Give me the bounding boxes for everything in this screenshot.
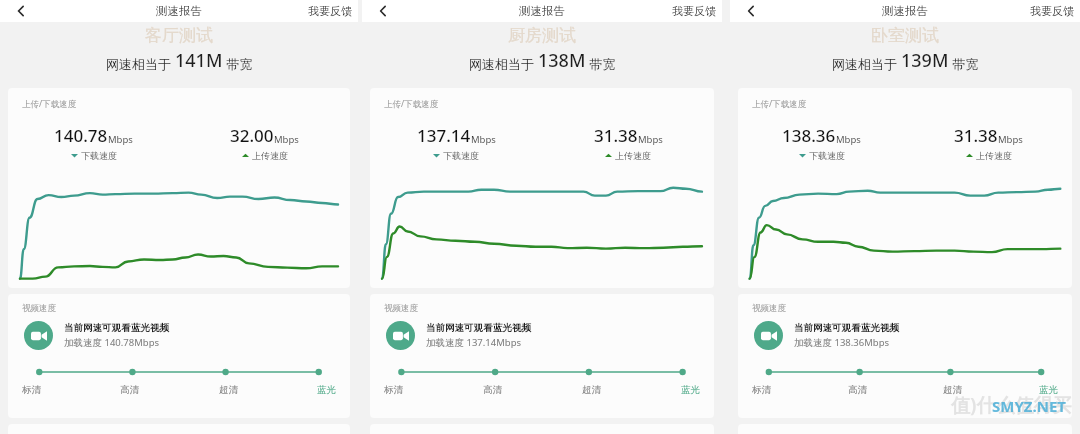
staticText: 我要反馈 bbox=[308, 4, 352, 18]
button[interactable]: 视频速度 bbox=[370, 294, 714, 418]
staticText: 下载速度 bbox=[443, 150, 479, 161]
staticText: 测速报告 bbox=[882, 4, 928, 18]
staticText: 上传速度 bbox=[615, 150, 651, 161]
staticText: 视频速度 bbox=[384, 303, 418, 314]
staticText: 下载速度 bbox=[809, 150, 845, 161]
button[interactable]: 我要反馈 bbox=[1024, 1, 1080, 21]
button[interactable]: 视频速度 bbox=[8, 294, 350, 418]
staticText: 我要反馈 bbox=[1030, 4, 1074, 18]
staticText: 蓝光视频 bbox=[131, 322, 169, 334]
button[interactable]: 上传/下载速度 bbox=[738, 88, 1072, 288]
staticText: 超清 bbox=[943, 384, 962, 396]
staticText: 138M bbox=[538, 48, 586, 73]
staticText: 标清 bbox=[22, 384, 41, 396]
staticText: Mbps bbox=[638, 133, 663, 146]
staticText: 蓝光 bbox=[317, 384, 336, 396]
staticText: 高清 bbox=[848, 384, 867, 396]
staticText: 加载速度 140.78Mbps bbox=[64, 336, 160, 349]
staticText: 上传/下载速度 bbox=[22, 98, 77, 110]
staticText: 超清 bbox=[219, 384, 238, 396]
staticText: Mbps bbox=[108, 133, 133, 146]
staticText: 卧室测试 bbox=[871, 25, 939, 46]
staticText: Mbps bbox=[274, 133, 299, 146]
staticText: Mbps bbox=[471, 133, 496, 146]
staticText: 蓝光 bbox=[1039, 384, 1058, 396]
staticText: 当前网速可观看 bbox=[64, 322, 131, 334]
staticText: 140.78 bbox=[54, 124, 108, 147]
staticText: 测速报告 bbox=[519, 4, 565, 18]
button[interactable]: Back bbox=[8, 0, 34, 22]
staticText: 标清 bbox=[384, 384, 403, 396]
staticText: 带宽 bbox=[223, 55, 253, 73]
staticText: 我要反馈 bbox=[672, 4, 716, 18]
button[interactable]: Back bbox=[370, 0, 396, 22]
staticText: 138.36 bbox=[782, 124, 836, 147]
staticText: 加载速度 138.36Mbps bbox=[794, 336, 890, 349]
staticText: 网速相当于 bbox=[106, 55, 175, 73]
staticText: Mbps bbox=[998, 133, 1023, 146]
staticText: 141M bbox=[175, 48, 223, 73]
staticText: 厨房测试 bbox=[508, 25, 576, 46]
staticText: 视频速度 bbox=[752, 303, 786, 314]
staticText: 客厅测试 bbox=[145, 25, 213, 46]
staticText: 值)什么值得买 bbox=[951, 392, 1072, 418]
button[interactable]: 我要反馈 bbox=[666, 1, 722, 21]
staticText: 139M bbox=[901, 48, 949, 73]
staticText: 下载速度 bbox=[81, 150, 117, 161]
staticText: 蓝光 bbox=[681, 384, 700, 396]
staticText: 标清 bbox=[752, 384, 771, 396]
staticText: SMYZ.NET bbox=[992, 396, 1066, 416]
staticText: 蓝光视频 bbox=[861, 322, 899, 334]
staticText: 网速相当于 bbox=[469, 55, 538, 73]
staticText: Mbps bbox=[836, 133, 861, 146]
staticText: 高清 bbox=[483, 384, 502, 396]
staticText: 高清 bbox=[120, 384, 139, 396]
button[interactable]: 上传/下载速度 bbox=[8, 88, 350, 288]
button[interactable]: 我要反馈 bbox=[302, 1, 358, 21]
staticText: 加载速度 137.14Mbps bbox=[426, 336, 522, 349]
staticText: 测速报告 bbox=[156, 4, 202, 18]
staticText: 上传速度 bbox=[252, 150, 288, 161]
staticText: 31.38 bbox=[954, 124, 998, 147]
staticText: 当前网速可观看 bbox=[426, 322, 493, 334]
staticText: 上传/下载速度 bbox=[384, 98, 439, 110]
staticText: 带宽 bbox=[586, 55, 616, 73]
staticText: 蓝光视频 bbox=[493, 322, 531, 334]
staticText: 网速相当于 bbox=[832, 55, 901, 73]
staticText: 137.14 bbox=[417, 124, 471, 147]
staticText: 当前网速可观看 bbox=[794, 322, 861, 334]
staticText: 带宽 bbox=[949, 55, 979, 73]
staticText: 上传/下载速度 bbox=[752, 98, 807, 110]
staticText: 32.00 bbox=[230, 124, 274, 147]
staticText: 视频速度 bbox=[22, 303, 56, 314]
button[interactable]: 视频速度 bbox=[738, 294, 1072, 418]
staticText: 超清 bbox=[582, 384, 601, 396]
staticText: 上传速度 bbox=[976, 150, 1012, 161]
button[interactable]: Back bbox=[738, 0, 764, 22]
staticText: 31.38 bbox=[594, 124, 638, 147]
button[interactable]: 上传/下载速度 bbox=[370, 88, 714, 288]
